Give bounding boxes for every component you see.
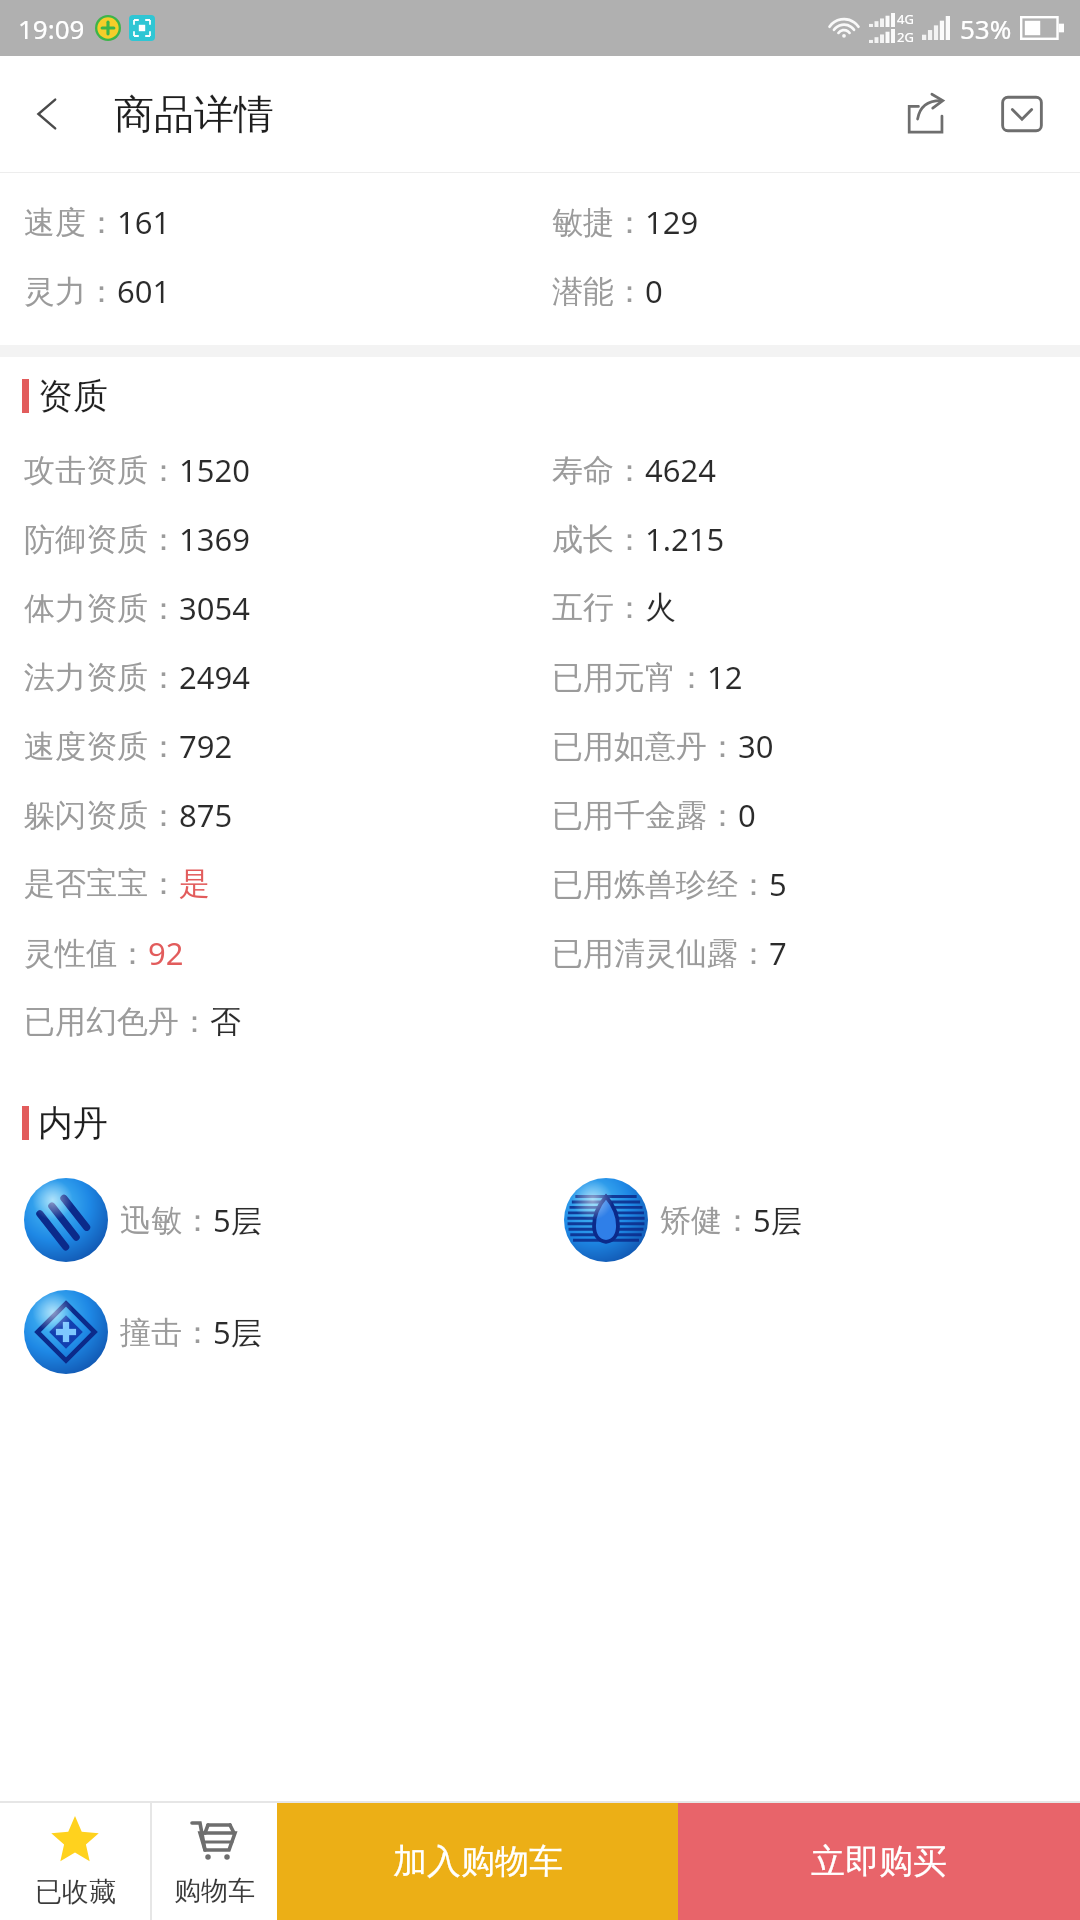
staticText: 内丹	[38, 1101, 108, 1145]
staticText: 防御资质：	[24, 520, 179, 559]
button[interactable]: Share	[878, 66, 974, 162]
staticText: 7	[769, 932, 787, 974]
button[interactable]: Back	[0, 66, 96, 162]
staticText: 3054	[179, 587, 250, 629]
staticText: 火	[645, 588, 676, 627]
staticText: 体力资质：	[24, 589, 179, 628]
staticText: 已用千金露：	[552, 796, 738, 835]
staticText: 立即购买	[811, 1840, 947, 1883]
staticText: 迅敏：	[120, 1201, 213, 1240]
staticText: 5	[769, 863, 787, 905]
staticText: 161	[117, 201, 171, 243]
staticText: 5层	[753, 1199, 802, 1241]
button[interactable]: Messages	[974, 66, 1070, 162]
staticText: 攻击资质：	[24, 451, 179, 490]
staticText: 129	[645, 201, 699, 243]
staticText: 加入购物车	[393, 1840, 563, 1883]
staticText: 12	[707, 656, 743, 698]
staticText: 购物车	[174, 1874, 255, 1908]
button[interactable]: 购物车	[152, 1803, 277, 1920]
staticText: 躲闪资质：	[24, 796, 179, 835]
staticText: 5层	[213, 1311, 262, 1353]
staticText: 601	[117, 270, 171, 312]
staticText: 速度：	[24, 203, 117, 242]
staticText: 0	[738, 794, 756, 836]
staticText: 已用如意丹：	[552, 727, 738, 766]
button[interactable]: 加入购物车	[277, 1803, 678, 1920]
staticText: 已用清灵仙露：	[552, 934, 769, 973]
staticText: 寿命：	[552, 451, 645, 490]
staticText: 92	[148, 932, 184, 974]
staticText: 灵性值：	[24, 934, 148, 973]
staticText: 已用元宵：	[552, 658, 707, 697]
staticText: 法力资质：	[24, 658, 179, 697]
staticText: 4624	[645, 449, 716, 491]
staticText: 1.215	[645, 518, 725, 560]
staticText: 是	[179, 864, 210, 903]
staticText: 1369	[179, 518, 250, 560]
staticText: 成长：	[552, 520, 645, 559]
staticText: 矫健：	[660, 1201, 753, 1240]
staticText: 速度资质：	[24, 727, 179, 766]
staticText: 已用炼兽珍经：	[552, 865, 769, 904]
staticText: 灵力：	[24, 272, 117, 311]
staticText: 资质	[38, 374, 108, 418]
staticText: 商品详情	[114, 89, 274, 139]
staticText: 30	[738, 725, 774, 767]
staticText: 潜能：	[552, 272, 645, 311]
button[interactable]: 已收藏	[0, 1803, 150, 1920]
staticText: 792	[179, 725, 233, 767]
staticText: 4G	[897, 10, 914, 28]
staticText: 875	[179, 794, 233, 836]
staticText: 53%	[960, 11, 1012, 46]
staticText: 1520	[179, 449, 250, 491]
staticText: 19:09	[18, 11, 85, 46]
staticText: 否	[210, 1002, 241, 1041]
staticText: 撞击：	[120, 1313, 213, 1352]
staticText: 5层	[213, 1199, 262, 1241]
button[interactable]: 迅敏：	[24, 1168, 540, 1272]
staticText: 2G	[897, 28, 914, 46]
staticText: 五行：	[552, 588, 645, 627]
staticText: 2494	[179, 656, 250, 698]
button[interactable]: 撞击：	[24, 1280, 540, 1384]
button[interactable]: 立即购买	[678, 1803, 1080, 1920]
staticText: 是否宝宝：	[24, 864, 179, 903]
staticText: 已收藏	[35, 1875, 116, 1909]
staticText: 0	[645, 270, 663, 312]
staticText: 敏捷：	[552, 203, 645, 242]
button[interactable]: 矫健：	[564, 1168, 1080, 1272]
staticText: 已用幻色丹：	[24, 1002, 210, 1041]
